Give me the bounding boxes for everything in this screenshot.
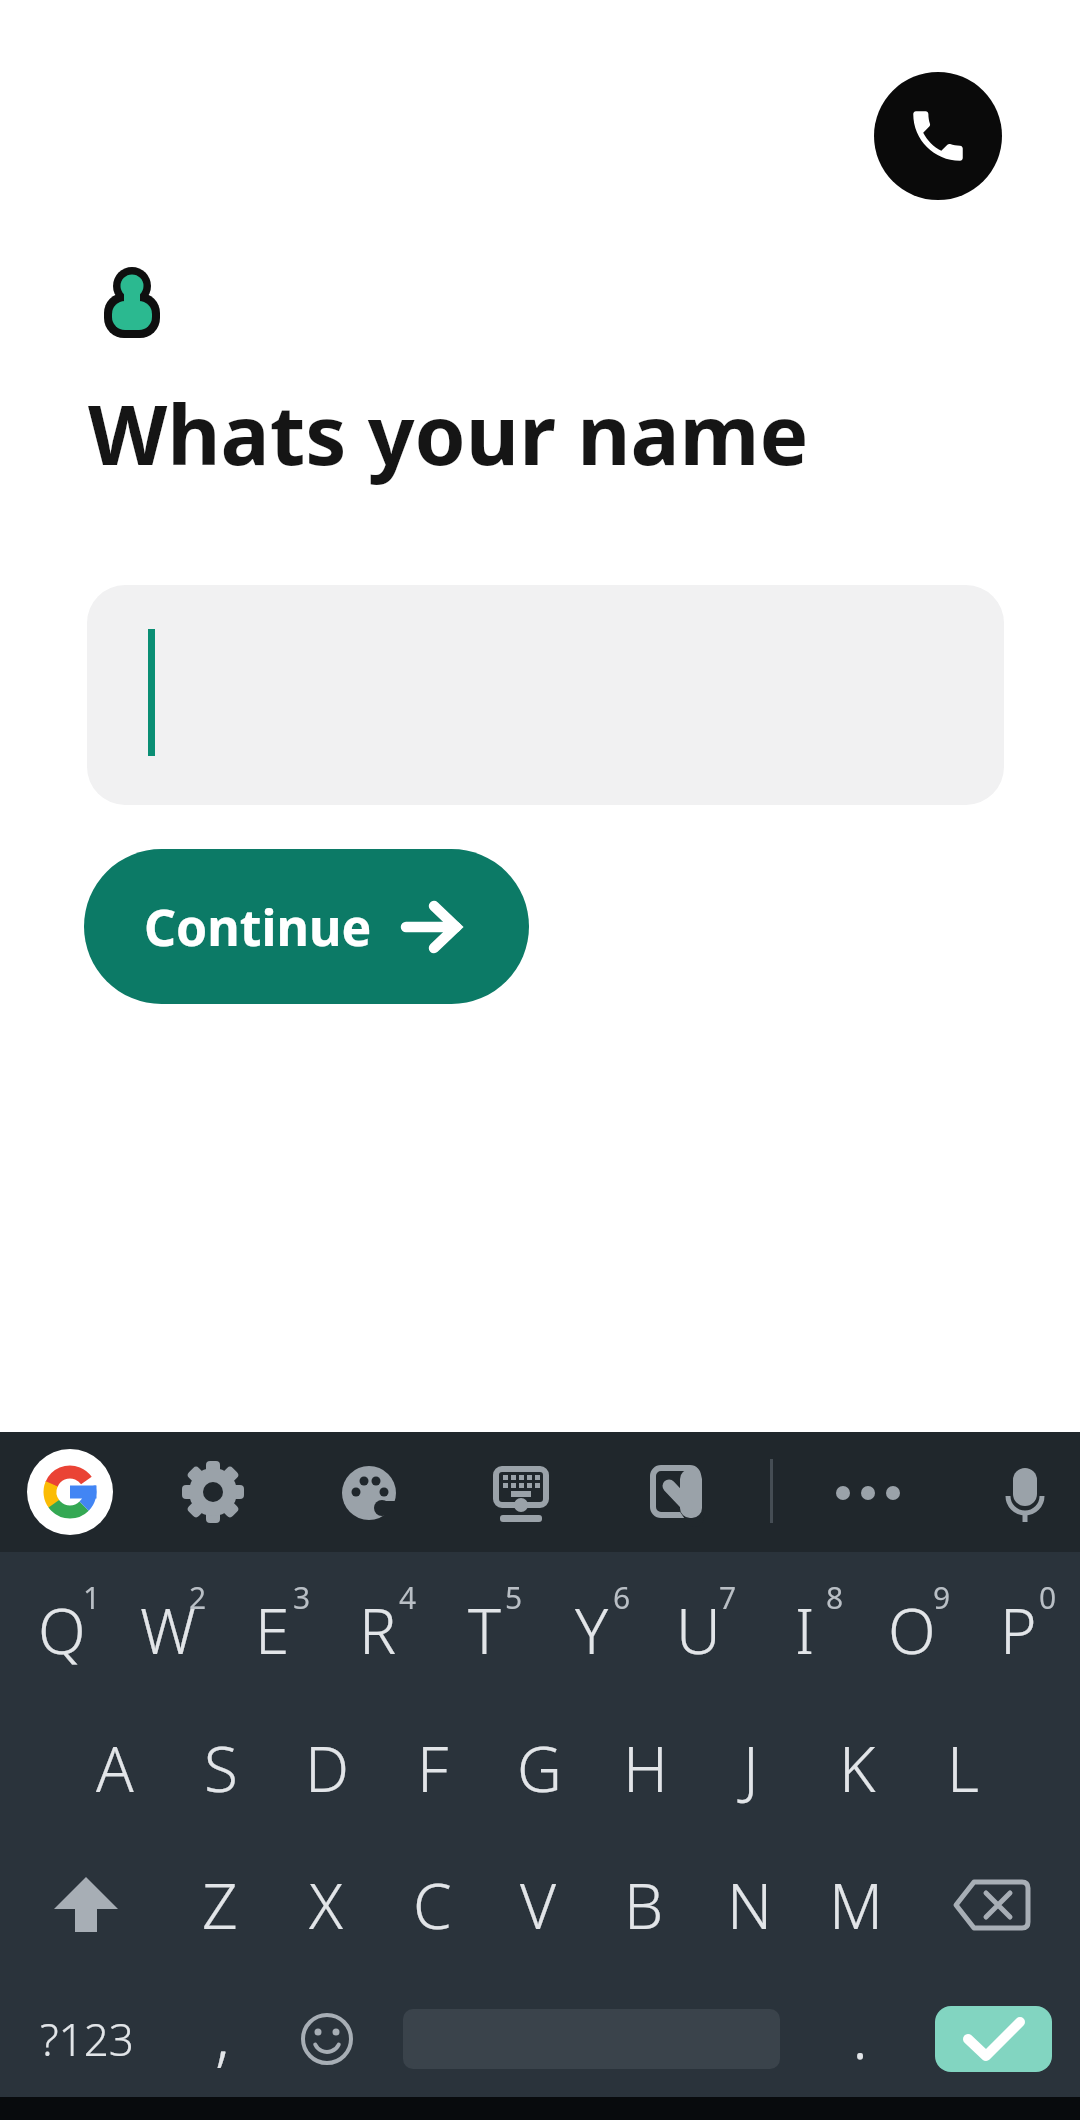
button[interactable] bbox=[26, 1845, 146, 1965]
staticText: A bbox=[96, 1726, 134, 1810]
button[interactable] bbox=[473, 1444, 569, 1540]
button[interactable]: R bbox=[325, 1566, 431, 1694]
button[interactable]: X bbox=[273, 1841, 379, 1969]
button[interactable]: Continue bbox=[84, 849, 529, 1004]
button[interactable] bbox=[628, 1444, 724, 1540]
button[interactable] bbox=[932, 1845, 1052, 1965]
staticText: Y bbox=[575, 1588, 609, 1672]
staticText: N bbox=[727, 1863, 773, 1947]
staticText: S bbox=[204, 1726, 238, 1810]
staticText: C bbox=[413, 1863, 452, 1947]
button[interactable]: C bbox=[379, 1841, 485, 1969]
button[interactable]: D bbox=[274, 1704, 380, 1832]
button[interactable] bbox=[874, 72, 1002, 200]
staticText: B bbox=[624, 1863, 664, 1947]
button[interactable]: O bbox=[859, 1566, 965, 1694]
button[interactable]: Y bbox=[539, 1566, 645, 1694]
staticText: P bbox=[1000, 1588, 1037, 1672]
staticText: 0 bbox=[1039, 1577, 1057, 1618]
button[interactable]: Z bbox=[167, 1841, 273, 1969]
button[interactable] bbox=[277, 1989, 377, 2089]
button[interactable]: J bbox=[698, 1704, 804, 1832]
staticText: , bbox=[215, 1988, 230, 2078]
staticText: V bbox=[520, 1863, 557, 1947]
button[interactable] bbox=[165, 1444, 261, 1540]
button[interactable] bbox=[87, 585, 1004, 805]
staticText: R bbox=[359, 1588, 397, 1672]
staticText: T bbox=[468, 1588, 501, 1672]
button[interactable] bbox=[321, 1444, 417, 1540]
button[interactable]: G bbox=[486, 1704, 592, 1832]
button[interactable]: F bbox=[380, 1704, 486, 1832]
staticText: H bbox=[623, 1726, 668, 1810]
staticText: 8 bbox=[826, 1577, 844, 1618]
staticText: Whats your name bbox=[88, 377, 809, 489]
staticText: W bbox=[140, 1588, 196, 1672]
staticText: 2 bbox=[189, 1577, 207, 1618]
button[interactable]: U bbox=[645, 1566, 751, 1694]
staticText: 3 bbox=[293, 1577, 311, 1618]
staticText: L bbox=[947, 1726, 979, 1810]
button[interactable]: L bbox=[910, 1704, 1016, 1832]
button[interactable] bbox=[22, 1444, 118, 1540]
button[interactable]: K bbox=[804, 1704, 910, 1832]
staticText: U bbox=[676, 1588, 721, 1672]
button[interactable]: A bbox=[62, 1704, 168, 1832]
staticText: F bbox=[417, 1726, 449, 1810]
button[interactable]: I bbox=[752, 1566, 858, 1694]
button[interactable] bbox=[977, 1444, 1073, 1540]
staticText: X bbox=[309, 1863, 343, 1947]
staticText: ?123 bbox=[40, 2009, 134, 2069]
button[interactable]: W bbox=[115, 1566, 221, 1694]
staticText: Continue bbox=[144, 893, 372, 961]
button[interactable]: Q bbox=[9, 1566, 115, 1694]
button[interactable]: P bbox=[965, 1566, 1071, 1694]
button[interactable]: T bbox=[431, 1566, 537, 1694]
staticText: 9 bbox=[933, 1577, 951, 1618]
button[interactable]: . bbox=[807, 1969, 913, 2097]
staticText: D bbox=[305, 1726, 350, 1810]
button[interactable]: E bbox=[219, 1566, 325, 1694]
staticText: Q bbox=[38, 1588, 86, 1672]
button[interactable] bbox=[820, 1444, 916, 1540]
staticText: 1 bbox=[83, 1577, 101, 1618]
staticText: E bbox=[255, 1588, 290, 1672]
staticText: O bbox=[888, 1588, 936, 1672]
staticText: J bbox=[743, 1726, 759, 1810]
button[interactable]: B bbox=[591, 1841, 697, 1969]
staticText: 4 bbox=[399, 1577, 417, 1618]
button[interactable]: M bbox=[803, 1841, 909, 1969]
staticText: Z bbox=[202, 1863, 238, 1947]
staticText: 5 bbox=[505, 1577, 523, 1618]
staticText: I bbox=[795, 1588, 815, 1672]
button[interactable]: H bbox=[592, 1704, 698, 1832]
button[interactable]: , bbox=[169, 1969, 275, 2097]
staticText: 7 bbox=[719, 1577, 737, 1618]
staticText: K bbox=[839, 1726, 876, 1810]
button[interactable]: ?123 bbox=[34, 1975, 140, 2103]
button[interactable]: N bbox=[697, 1841, 803, 1969]
button[interactable]: S bbox=[168, 1704, 274, 1832]
staticText: G bbox=[517, 1726, 562, 1810]
staticText: 6 bbox=[613, 1577, 631, 1618]
staticText: . bbox=[852, 1988, 869, 2078]
staticText: M bbox=[829, 1863, 884, 1947]
button[interactable]: V bbox=[485, 1841, 591, 1969]
button[interactable] bbox=[935, 2006, 1052, 2072]
